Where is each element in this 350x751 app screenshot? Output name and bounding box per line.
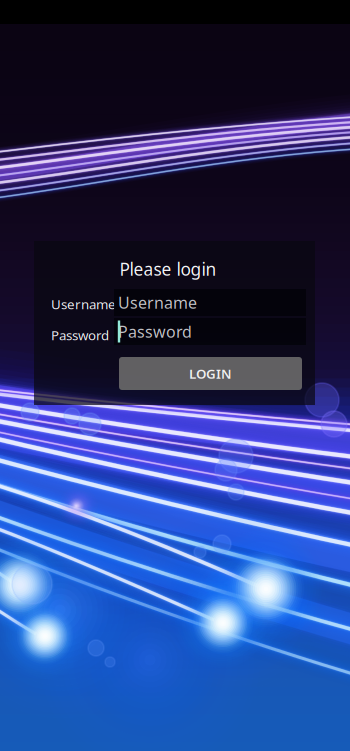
button[interactable]: Username [114, 289, 306, 316]
button[interactable]: LOGIN [119, 357, 302, 390]
staticText: Password [118, 321, 192, 342]
staticText: Username [51, 295, 116, 313]
staticText: LOGIN [189, 365, 232, 382]
staticText: Username [118, 292, 197, 313]
staticText: Password [51, 326, 109, 344]
button[interactable]: Password [114, 318, 306, 345]
staticText: Please login [119, 257, 216, 280]
